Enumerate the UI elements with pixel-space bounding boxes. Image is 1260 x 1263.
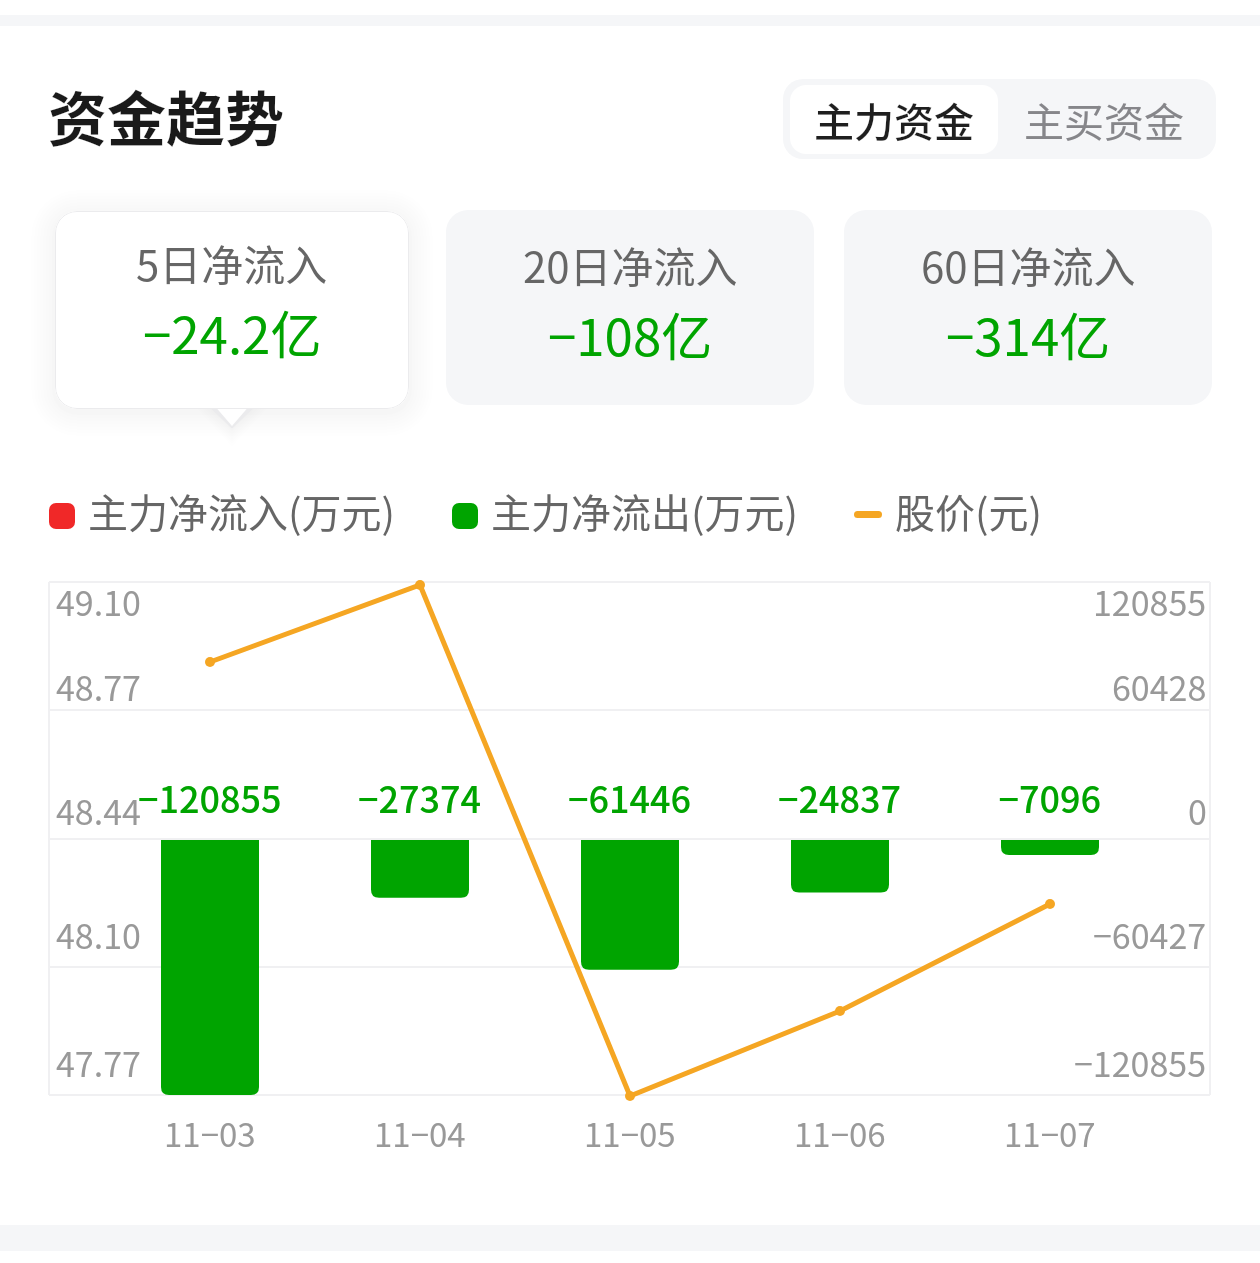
button[interactable]: 主力净流出(万元) (452, 482, 799, 546)
button[interactable]: 5日净流入 (55, 211, 409, 409)
staticText: 股价(元) (895, 482, 1043, 540)
staticText: −24.2亿 (143, 295, 322, 369)
button[interactable]: 股价(元) (854, 482, 1043, 546)
staticText: 60日净流入 (921, 234, 1136, 295)
staticText: −108亿 (548, 297, 713, 371)
staticText: 5日净流入 (136, 232, 328, 293)
button[interactable]: 主力资金 (790, 85, 998, 154)
staticText: 主力资金 (814, 91, 974, 149)
staticText: 主力净流入(万元) (88, 482, 396, 540)
button[interactable]: 60日净流入 (844, 210, 1212, 405)
staticText: 20日净流入 (523, 234, 738, 295)
staticText: 主买资金 (1024, 91, 1184, 149)
button[interactable]: 主买资金 (998, 85, 1209, 154)
staticText: 资金趋势 (48, 73, 285, 158)
button[interactable]: 主力净流入(万元) (49, 482, 396, 546)
staticText: −314亿 (946, 297, 1111, 371)
staticText: 主力净流出(万元) (491, 482, 799, 540)
button[interactable]: 20日净流入 (446, 210, 814, 405)
